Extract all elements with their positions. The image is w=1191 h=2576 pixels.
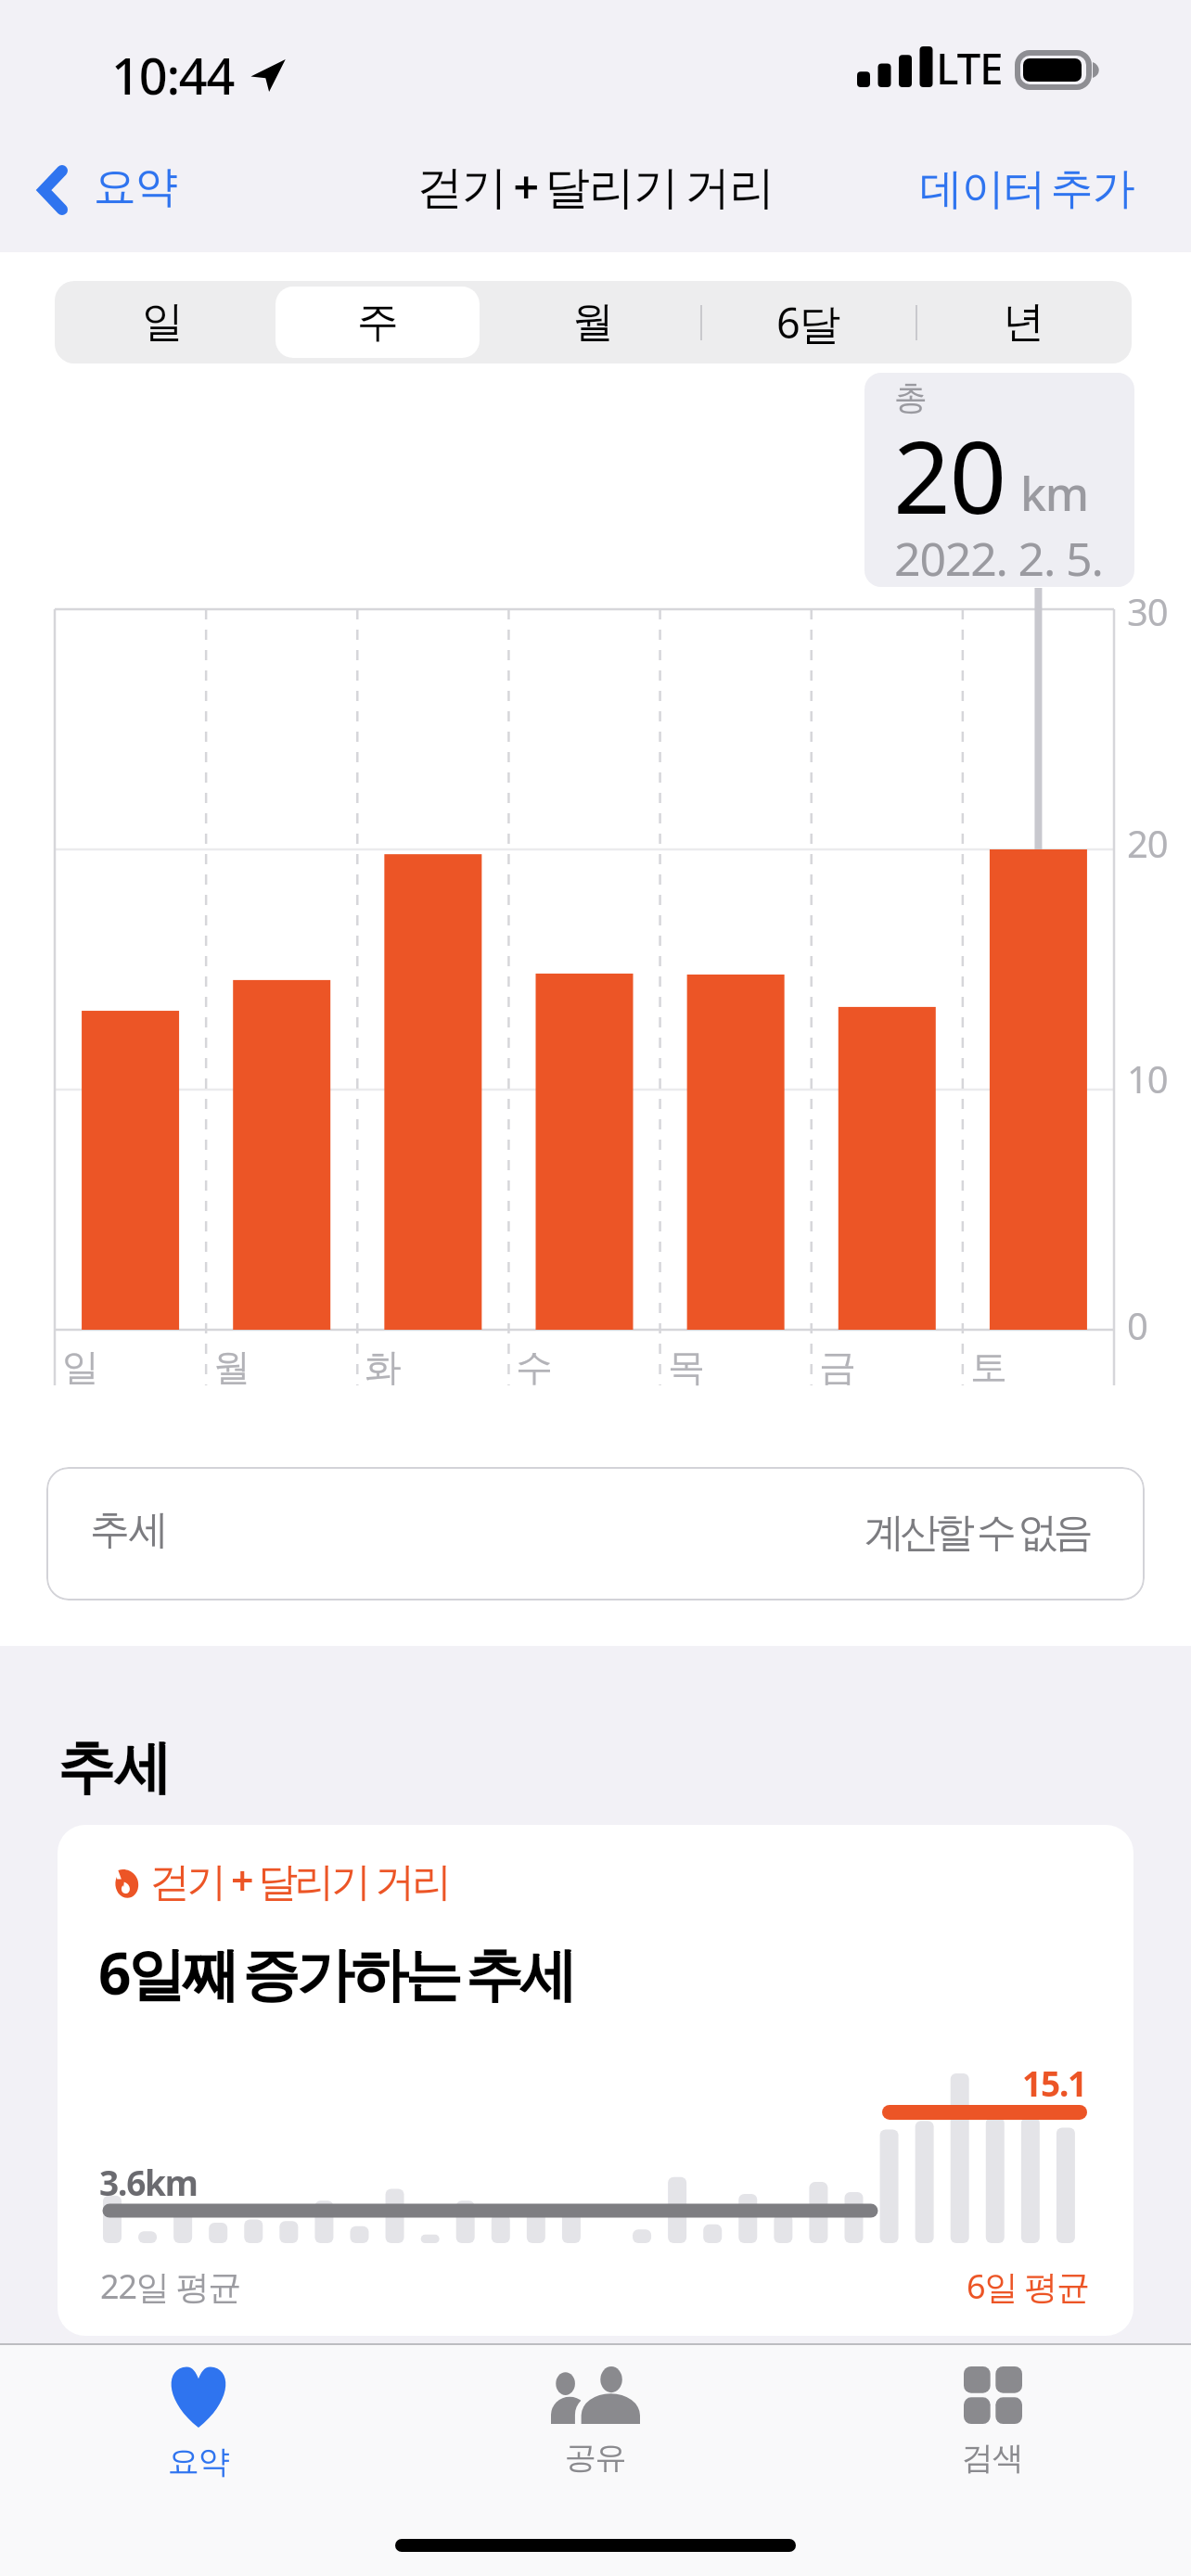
- staticText: 공유: [565, 2438, 626, 2478]
- staticText: 10: [1127, 1053, 1168, 1103]
- staticText: 금: [819, 1344, 855, 1390]
- staticText: 토: [970, 1344, 1006, 1390]
- staticText: 15.1: [1022, 2060, 1087, 2106]
- staticText: 총: [894, 376, 927, 418]
- button[interactable]: 검색: [794, 2345, 1191, 2498]
- staticText: 20: [893, 407, 1006, 543]
- staticText: 10:44: [111, 41, 235, 109]
- staticText: 수: [516, 1344, 552, 1390]
- staticText: 6일 평균: [967, 2264, 1089, 2309]
- staticText: 월: [572, 296, 613, 349]
- staticText: 걷기 + 달리기 거리: [150, 1853, 449, 1907]
- button[interactable]: 추세: [46, 1467, 1145, 1600]
- staticText: 일: [142, 296, 183, 349]
- staticText: LTE: [936, 39, 1003, 97]
- staticText: 22일 평균: [100, 2264, 241, 2309]
- staticText: km: [1020, 462, 1088, 525]
- staticText: 년: [1003, 296, 1044, 349]
- staticText: 데이터 추가: [920, 158, 1134, 216]
- staticText: 6일째 증가하는 추세: [98, 1933, 574, 2012]
- staticText: 0: [1127, 1300, 1147, 1350]
- staticText: 6달: [776, 294, 840, 351]
- button[interactable]: 요약: [20, 150, 190, 230]
- staticText: 목: [668, 1344, 704, 1390]
- button[interactable]: 데이터 추가: [905, 145, 1149, 229]
- other: 공유: [551, 2366, 640, 2424]
- staticText: 20: [1127, 818, 1168, 868]
- other: 검색: [964, 2366, 1022, 2424]
- staticText: 3.6km: [99, 2159, 198, 2205]
- button[interactable]: 6달: [700, 281, 916, 363]
- button[interactable]: 주: [270, 281, 485, 363]
- button[interactable]: 요약: [0, 2345, 397, 2498]
- staticText: 요약: [168, 2442, 229, 2481]
- staticText: 월: [213, 1344, 250, 1390]
- staticText: 계산할 수 없음: [864, 1503, 1089, 1558]
- staticText: 주: [357, 296, 398, 349]
- staticText: 2022. 2. 5.: [894, 527, 1103, 587]
- staticText: 요약: [94, 160, 177, 214]
- staticText: 일: [62, 1344, 98, 1390]
- staticText: 추세: [58, 1731, 171, 1804]
- button[interactable]: 일: [55, 281, 270, 363]
- staticText: 화: [365, 1344, 401, 1390]
- staticText: 30: [1127, 586, 1168, 636]
- button[interactable]: 년: [916, 281, 1131, 363]
- staticText: 걷기 + 달리기 거리: [417, 155, 775, 217]
- staticText: 검색: [962, 2438, 1023, 2478]
- other: 요약: [166, 2366, 231, 2428]
- button[interactable]: 공유: [397, 2345, 794, 2498]
- button[interactable]: 걷기 + 달리기 거리: [58, 1825, 1133, 2336]
- button[interactable]: 월: [485, 281, 700, 363]
- staticText: 추세: [90, 1505, 168, 1555]
